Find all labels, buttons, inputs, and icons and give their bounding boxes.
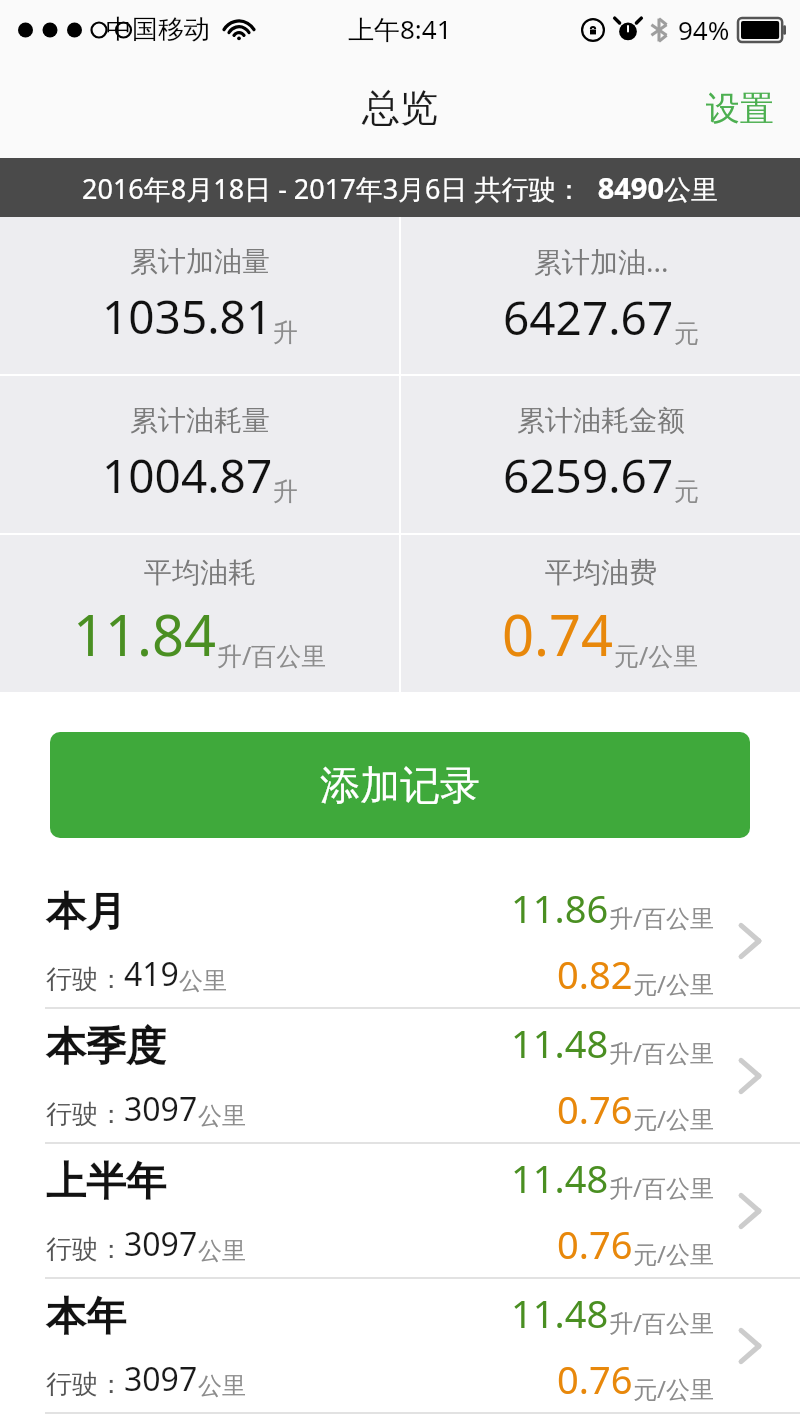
staticText: 公里 [179, 966, 227, 996]
button[interactable]: 平均油耗 [0, 535, 399, 692]
staticText: 1035.81 [102, 285, 273, 348]
staticText: 累计加油... [534, 242, 669, 280]
staticText: 设置 [706, 87, 774, 130]
button[interactable]: 累计油耗金额 [401, 376, 800, 533]
staticText: 11.48 [511, 1152, 609, 1204]
staticText: 0.82 [557, 948, 633, 1000]
staticText: 11.48 [511, 1287, 609, 1339]
staticText: 0.76 [557, 1218, 633, 1270]
button[interactable]: 累计加油... [401, 217, 800, 374]
button[interactable]: 添加记录 [50, 732, 750, 838]
button[interactable]: 平均油费 [401, 535, 800, 692]
button[interactable]: 设置 [680, 73, 800, 144]
staticText: 3097 [124, 1357, 198, 1401]
staticText: 总览 [362, 84, 438, 132]
staticText: 平均油耗 [144, 555, 256, 590]
staticText: 元/公里 [633, 1237, 714, 1270]
staticText: 元/公里 [633, 967, 714, 1000]
staticText: 行驶： [46, 1233, 124, 1266]
staticText: 本月 [46, 886, 126, 936]
staticText: 元/公里 [633, 1102, 714, 1135]
staticText: 升/百公里 [609, 1036, 714, 1069]
staticText: 0.76 [557, 1083, 633, 1135]
staticText: 6427.67 [503, 286, 674, 349]
button[interactable]: 本月 [0, 874, 800, 1009]
other: 查看详情 [736, 918, 764, 964]
staticText: 累计加油量 [130, 244, 270, 279]
staticText: 94% [678, 12, 730, 47]
staticText: 添加记录 [320, 760, 480, 810]
staticText: 元/公里 [614, 638, 699, 672]
staticText: 本季度 [46, 1021, 166, 1071]
staticText: 上午8:41 [348, 11, 452, 47]
staticText: 升/百公里 [609, 1171, 714, 1204]
staticText: 升 [273, 476, 298, 507]
staticText: 0.76 [557, 1353, 633, 1405]
staticText: 元 [674, 318, 699, 349]
button[interactable]: 累计油耗量 [0, 376, 399, 533]
staticText: 3097 [124, 1087, 198, 1131]
other: 查看详情 [736, 1188, 764, 1234]
staticText: 元/公里 [633, 1372, 714, 1405]
staticText: 公里 [198, 1236, 246, 1266]
staticText: 行驶： [46, 963, 124, 996]
staticText: 本年 [46, 1291, 126, 1341]
staticText: 6259.67 [503, 444, 674, 507]
staticText: 累计油耗量 [130, 403, 270, 438]
staticText: 11.48 [511, 1017, 609, 1069]
other: 查看详情 [736, 1053, 764, 1099]
staticText: 行驶： [46, 1098, 124, 1131]
staticText: 419 [124, 952, 179, 996]
other: 查看详情 [736, 1323, 764, 1369]
button[interactable]: 累计加油量 [0, 217, 399, 374]
staticText: 11.84 [73, 596, 217, 672]
button[interactable]: 本季度 [0, 1009, 800, 1144]
staticText: 升/百公里 [609, 1306, 714, 1339]
button[interactable]: 本年 [0, 1279, 800, 1414]
staticText: 平均油费 [545, 555, 657, 590]
staticText: 2016年8月18日 - 2017年3月6日 共行驶： 8490公里 [82, 168, 718, 207]
staticText: 3097 [124, 1222, 198, 1266]
staticText: 升/百公里 [609, 901, 714, 934]
staticText: 上半年 [46, 1156, 166, 1206]
staticText: 公里 [198, 1101, 246, 1131]
button[interactable]: 上半年 [0, 1144, 800, 1279]
staticText: 公里 [198, 1371, 246, 1401]
staticText: 1004.87 [102, 444, 273, 507]
staticText: 升 [273, 317, 298, 348]
staticText: 0.74 [502, 596, 614, 672]
staticText: 行驶： [46, 1368, 124, 1401]
staticText: 中国移动 [106, 13, 210, 46]
staticText: 升/百公里 [217, 638, 327, 672]
staticText: 累计油耗金额 [517, 403, 685, 438]
staticText: 11.86 [511, 882, 609, 934]
staticText: 元 [674, 476, 699, 507]
